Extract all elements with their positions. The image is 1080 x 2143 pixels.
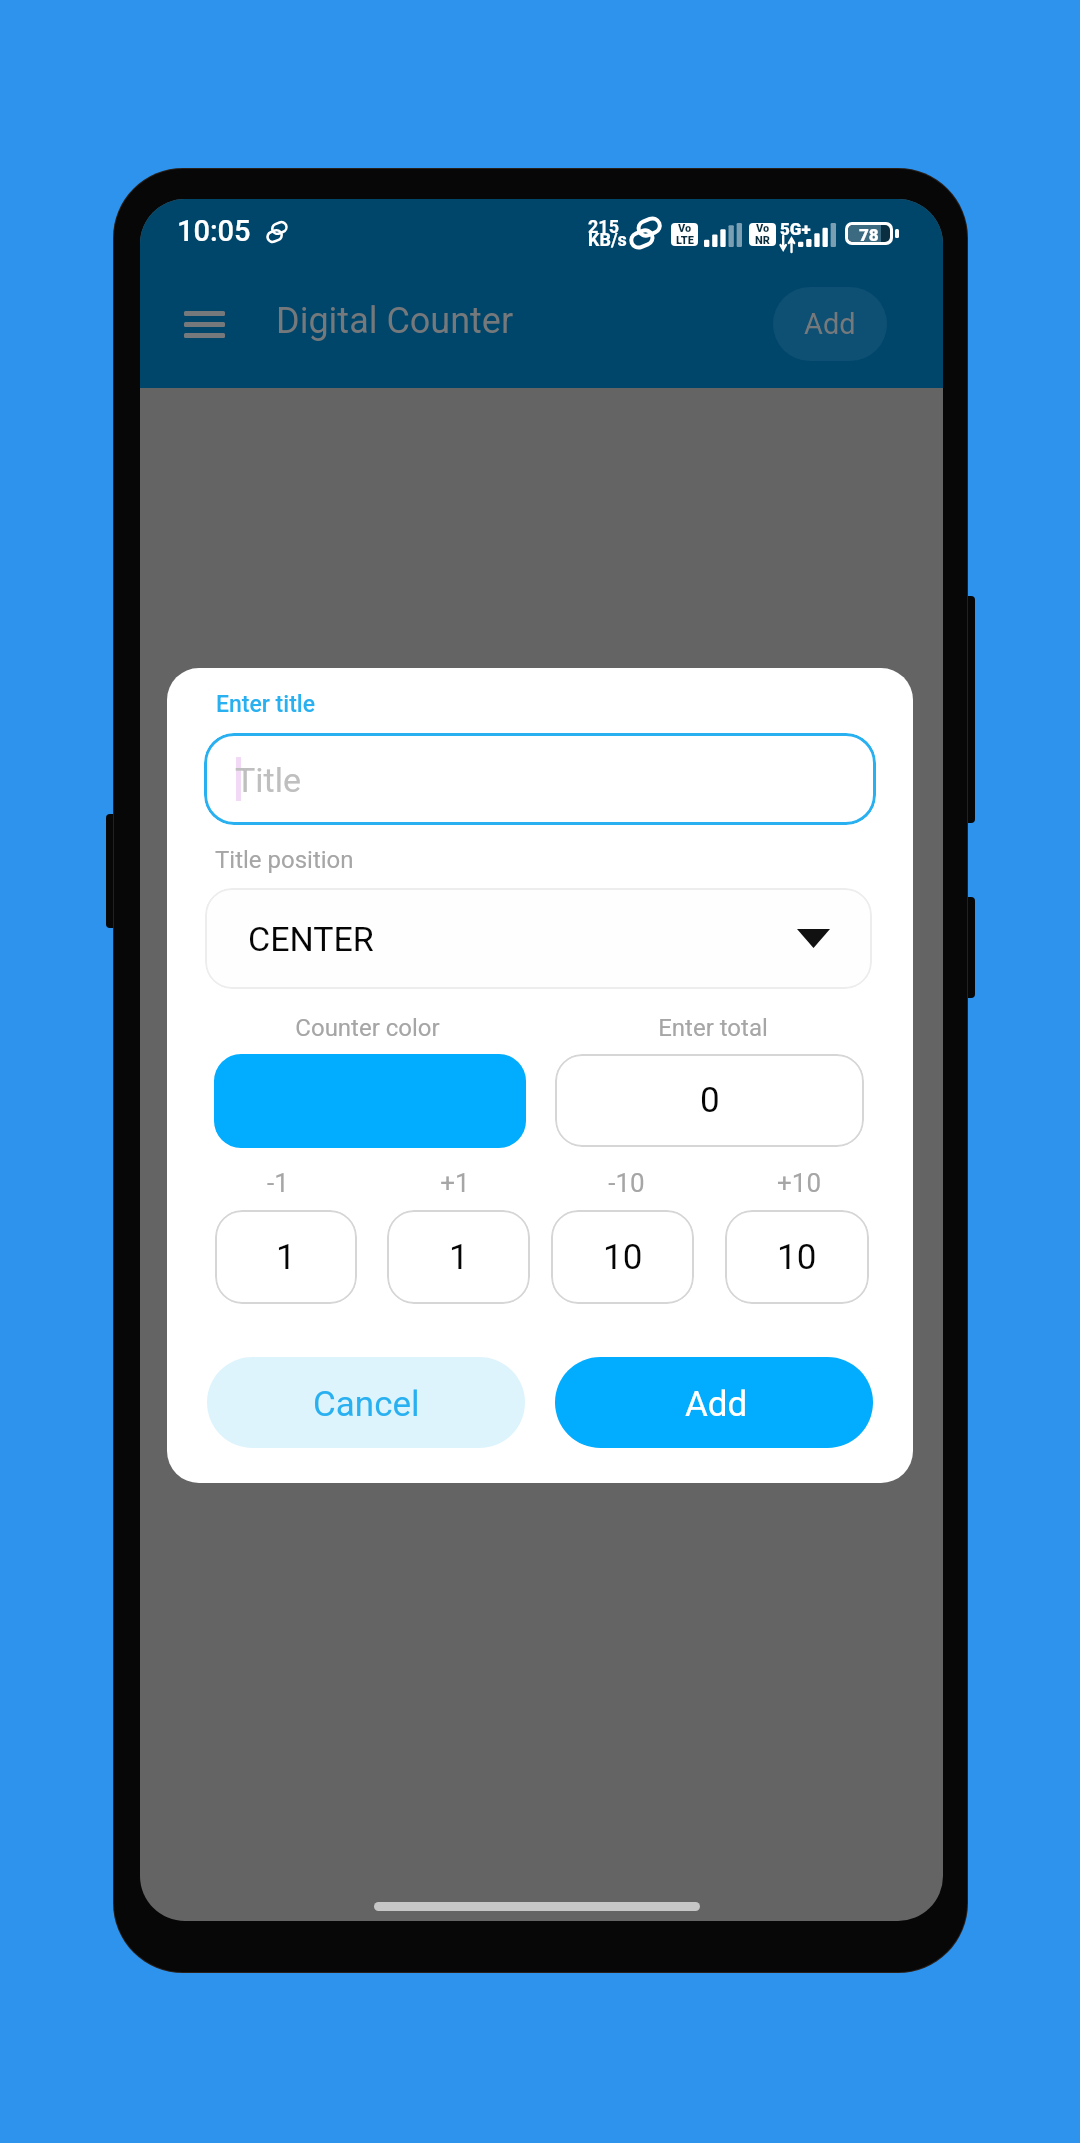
staticText: 10: [603, 1237, 643, 1278]
button[interactable]: 10: [725, 1210, 869, 1304]
button[interactable]: CENTER: [205, 888, 872, 989]
staticText: 1: [449, 1237, 469, 1278]
staticText: Counter color: [295, 1014, 440, 1042]
button[interactable]: Title: [204, 733, 876, 825]
staticText: 5G+: [780, 219, 811, 239]
button[interactable]: Add: [773, 287, 887, 361]
staticText: 215: [588, 216, 619, 237]
staticText: 10: [777, 1237, 817, 1278]
button[interactable]: 1: [215, 1210, 357, 1304]
staticText: 0: [700, 1080, 720, 1121]
staticText: KB/s: [588, 229, 627, 250]
button[interactable]: 0: [555, 1054, 864, 1147]
staticText: CENTER: [248, 919, 374, 959]
staticText: 1: [276, 1237, 296, 1278]
staticText: Enter total: [658, 1014, 768, 1042]
staticText: Add: [685, 1384, 748, 1425]
button[interactable]: Pick counter color: [214, 1054, 526, 1148]
staticText: LTE: [676, 234, 694, 246]
staticText: Cancel: [313, 1384, 420, 1425]
staticText: Title: [235, 760, 301, 800]
staticText: NR: [755, 234, 770, 246]
staticText: +1: [440, 1168, 470, 1198]
button[interactable]: 10: [551, 1210, 694, 1304]
staticText: -10: [608, 1168, 645, 1198]
staticText: +10: [777, 1168, 821, 1198]
staticText: Vo: [678, 223, 692, 235]
staticText: Title position: [215, 846, 354, 874]
staticText: 10:05: [177, 214, 251, 248]
staticText: Digital Counter: [276, 300, 514, 342]
button[interactable]: Open navigation menu: [168, 299, 241, 349]
button[interactable]: Cancel: [207, 1357, 525, 1448]
staticText: 78: [859, 225, 879, 242]
button[interactable]: Add: [555, 1357, 873, 1448]
staticText: -1: [267, 1168, 289, 1198]
staticText: Vo: [756, 223, 770, 235]
staticText: Enter title: [216, 691, 315, 718]
button[interactable]: 1: [387, 1210, 530, 1304]
staticText: Add: [804, 307, 856, 341]
